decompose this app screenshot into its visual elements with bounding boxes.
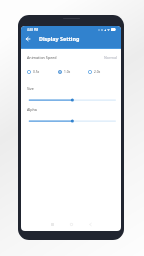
staticText: Size bbox=[27, 86, 34, 91]
button[interactable]: Back bbox=[24, 35, 32, 43]
button[interactable]: Slider bbox=[27, 119, 118, 123]
button[interactable]: Recents bbox=[48, 220, 56, 228]
button[interactable]: 1.0x bbox=[58, 69, 88, 75]
staticText: 0.5x bbox=[33, 70, 40, 74]
staticText: Animation Speed bbox=[27, 55, 57, 60]
button[interactable]: Home bbox=[67, 220, 75, 228]
button[interactable]: 2.0x bbox=[88, 69, 118, 75]
button[interactable]: 0.5x bbox=[27, 69, 58, 75]
button[interactable]: Slider bbox=[27, 98, 118, 102]
staticText: Alpha bbox=[27, 107, 37, 112]
staticText: 2.0x bbox=[94, 70, 101, 74]
staticText: 1.0x bbox=[64, 70, 71, 74]
staticText: Normal bbox=[104, 55, 118, 60]
staticText: Display Setting bbox=[39, 35, 80, 42]
staticText: 4:38 PM bbox=[27, 28, 39, 32]
